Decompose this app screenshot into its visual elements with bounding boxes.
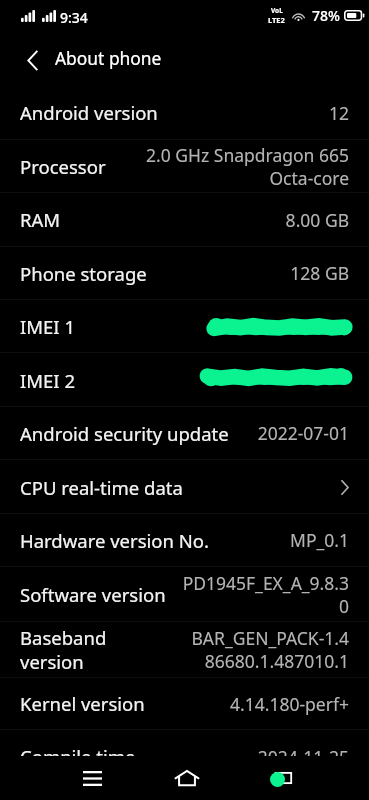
staticText: PD1945F_EX_A_9.8.3 0 [182, 571, 349, 618]
button[interactable]: Home [155, 758, 219, 798]
button[interactable]: Android security update [0, 407, 369, 460]
staticText: 8.00 GB [285, 208, 349, 232]
button[interactable]: CPU real-time data [0, 460, 369, 514]
button[interactable]: Software version [0, 567, 369, 622]
staticText: MP_0.1 [290, 528, 349, 552]
staticText: 12 [328, 101, 349, 125]
staticText: IMEI 1 [20, 314, 76, 339]
button[interactable]: Processor [0, 140, 369, 193]
staticText: LTE2 [268, 15, 285, 25]
staticText: Baseband version [20, 625, 107, 674]
staticText: 128 GB [290, 261, 349, 285]
staticText: 2024-11-25 [257, 745, 349, 756]
staticText: Processor [20, 154, 106, 179]
button[interactable]: Kernel version [0, 678, 369, 730]
button[interactable]: Baseband version [0, 622, 369, 678]
button[interactable]: Recent apps [60, 758, 124, 798]
staticText: Software version [20, 582, 166, 607]
button[interactable]: IMEI 1 [0, 300, 369, 353]
staticText: VoL [271, 6, 283, 15]
staticText: 2.0 GHz Snapdragon 665 Octa-core [146, 143, 349, 190]
button[interactable]: Phone storage [0, 247, 369, 300]
staticText: 4.14.180-perf+ [230, 692, 349, 716]
staticText: Kernel version [20, 691, 145, 716]
staticText: Compile time [20, 744, 136, 756]
button[interactable]: Android version [0, 86, 369, 140]
staticText: Android version [20, 100, 158, 125]
button[interactable]: IMEI 2 [0, 353, 369, 407]
staticText: RAM [20, 207, 61, 232]
button[interactable]: RAM [0, 193, 369, 247]
button[interactable]: Compile time [0, 730, 369, 756]
staticText: 78% [312, 6, 340, 25]
staticText: About phone [55, 46, 162, 70]
staticText: 9:34 [60, 8, 88, 27]
staticText: BAR_GEN_PACK-1.4 86680.1.487010.1 [191, 626, 349, 673]
button[interactable]: Back [250, 758, 314, 798]
staticText: 2022-07-01 [257, 421, 349, 445]
staticText: Hardware version No. [20, 528, 209, 553]
button[interactable]: Navigate up [6, 32, 58, 84]
staticText: CPU real-time data [20, 475, 183, 500]
staticText: IMEI 2 [20, 368, 76, 393]
button[interactable]: Hardware version No. [0, 514, 369, 567]
staticText: Android security update [20, 421, 229, 446]
staticText: Phone storage [20, 261, 147, 286]
